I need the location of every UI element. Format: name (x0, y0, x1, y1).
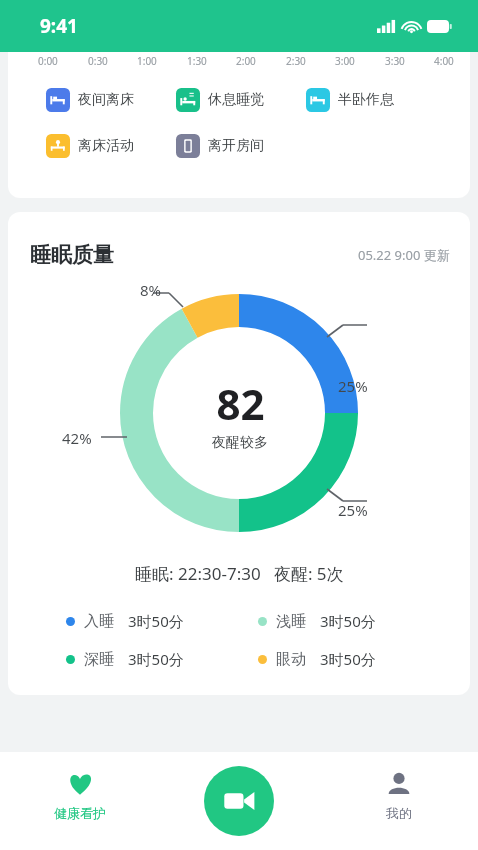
staticText: 25% (338, 500, 368, 520)
staticText: 42% (62, 428, 92, 448)
staticText: 我的 (386, 805, 412, 821)
staticText: 深睡 (84, 650, 114, 669)
button[interactable]: 半卧作息 (306, 88, 394, 112)
button[interactable]: 离开房间 (176, 134, 264, 158)
button[interactable]: 我的 (319, 752, 478, 850)
button[interactable]: 夜间离床 (46, 88, 134, 112)
button[interactable]: 休息睡觉 (176, 88, 264, 112)
button[interactable]: 入睡 (66, 611, 258, 631)
staticText: 8% (140, 280, 162, 300)
button[interactable]: 深睡 (66, 649, 258, 669)
staticText: 3时50分 (128, 649, 184, 669)
button[interactable]: 健康看护 (0, 752, 160, 850)
staticText: 0:30 (88, 54, 108, 68)
staticText: 3时50分 (320, 611, 376, 631)
staticText: 4:00 (434, 54, 454, 68)
staticText: 25% (338, 376, 368, 396)
staticText: 2:30 (286, 54, 306, 68)
staticText: 眼动 (276, 650, 306, 669)
staticText: 3:30 (385, 54, 405, 68)
staticText: 1:30 (187, 54, 207, 68)
staticText: 离床活动 (78, 137, 134, 155)
staticText: 睡眠: 22:30-7:30 夜醒: 5次 (135, 562, 344, 585)
staticText: 夜间离床 (78, 91, 134, 109)
staticText: 05.22 9:00 更新 (358, 246, 450, 264)
staticText: 3时50分 (128, 611, 184, 631)
staticText: 2:00 (236, 54, 256, 68)
button[interactable]: 离床活动 (46, 134, 134, 158)
staticText: 3:00 (335, 54, 355, 68)
staticText: 睡眠质量 (30, 242, 114, 268)
staticText: 休息睡觉 (208, 91, 264, 109)
staticText: 0:00 (38, 54, 58, 68)
button[interactable]: Video call (204, 766, 274, 836)
staticText: 9:41 (40, 13, 78, 39)
staticText: 82 (216, 375, 265, 432)
staticText: 离开房间 (208, 137, 264, 155)
staticText: 半卧作息 (338, 91, 394, 109)
button[interactable]: 眼动 (258, 649, 450, 669)
staticText: 夜醒较多 (212, 434, 268, 452)
staticText: 入睡 (84, 612, 114, 631)
staticText: 健康看护 (54, 805, 106, 821)
button[interactable]: 浅睡 (258, 611, 450, 631)
staticText: 浅睡 (276, 612, 306, 631)
staticText: 1:00 (137, 54, 157, 68)
staticText: 3时50分 (320, 649, 376, 669)
